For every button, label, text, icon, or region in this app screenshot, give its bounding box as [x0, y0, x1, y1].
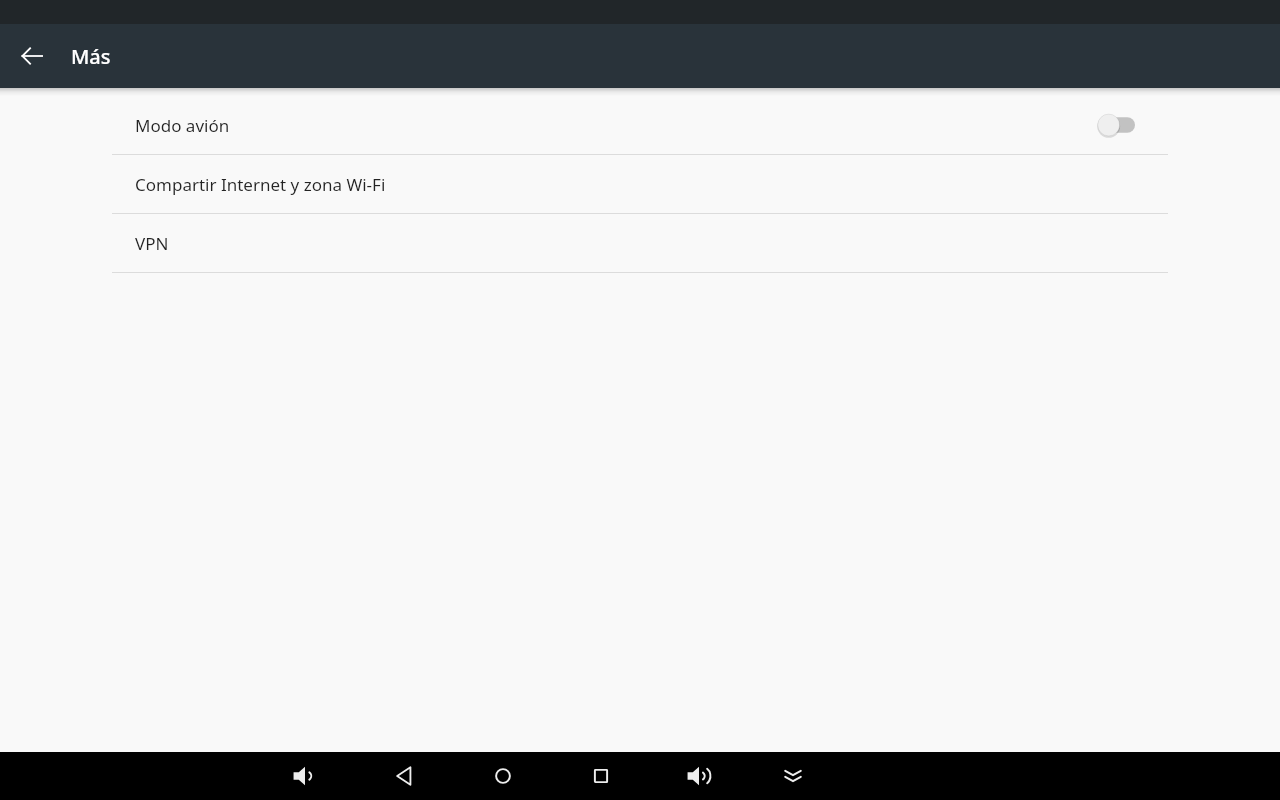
- button[interactable]: Back: [380, 752, 428, 800]
- button[interactable]: Modo avión: [0, 96, 1280, 154]
- button[interactable]: VPN: [0, 214, 1280, 272]
- button[interactable]: Volume up: [675, 752, 723, 800]
- button[interactable]: Volume down: [281, 752, 329, 800]
- staticText: Más: [71, 43, 111, 70]
- button[interactable]: Compartir Internet y zona Wi-Fi: [0, 155, 1280, 213]
- other: Modo avión toggle, off: [1097, 112, 1135, 138]
- button[interactable]: Home: [479, 752, 527, 800]
- staticText: VPN: [135, 232, 1168, 255]
- staticText: Modo avión: [135, 114, 1097, 137]
- button[interactable]: Recent apps: [577, 752, 625, 800]
- button[interactable]: Hide navigation bar: [769, 752, 817, 800]
- staticText: Compartir Internet y zona Wi-Fi: [135, 173, 1168, 196]
- button[interactable]: Back: [0, 24, 64, 88]
